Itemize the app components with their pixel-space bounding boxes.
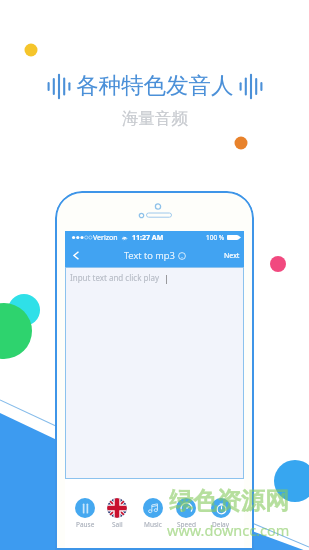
staticText: Next xyxy=(224,251,240,261)
staticText: 11:27 AM xyxy=(132,233,164,243)
staticText: Pause xyxy=(76,520,95,529)
button[interactable]: Next xyxy=(224,251,240,261)
staticText: Speed xyxy=(177,520,196,529)
staticText: Text to mp3 xyxy=(124,249,175,262)
staticText: www.downcc.com xyxy=(167,520,290,540)
staticText: Input text and click play xyxy=(70,272,160,283)
staticText: | xyxy=(164,272,169,284)
staticText: Verizon xyxy=(93,233,118,243)
staticText: 各种特色发音人 xyxy=(76,71,234,99)
staticText: 绿色资源网 xyxy=(169,486,289,516)
button[interactable]: Music xyxy=(137,498,169,529)
staticText: 海量音频 xyxy=(122,108,188,129)
button[interactable]: Back xyxy=(68,247,85,264)
button[interactable]: Pause xyxy=(69,498,101,529)
button[interactable]: Delay xyxy=(205,498,237,529)
staticText: Sail xyxy=(112,520,123,529)
button[interactable]: Speed xyxy=(170,498,202,529)
staticText: Music xyxy=(144,520,162,529)
staticText: 100 % xyxy=(206,233,225,242)
button[interactable]: Sail xyxy=(101,498,133,529)
staticText: Delay xyxy=(212,520,230,529)
